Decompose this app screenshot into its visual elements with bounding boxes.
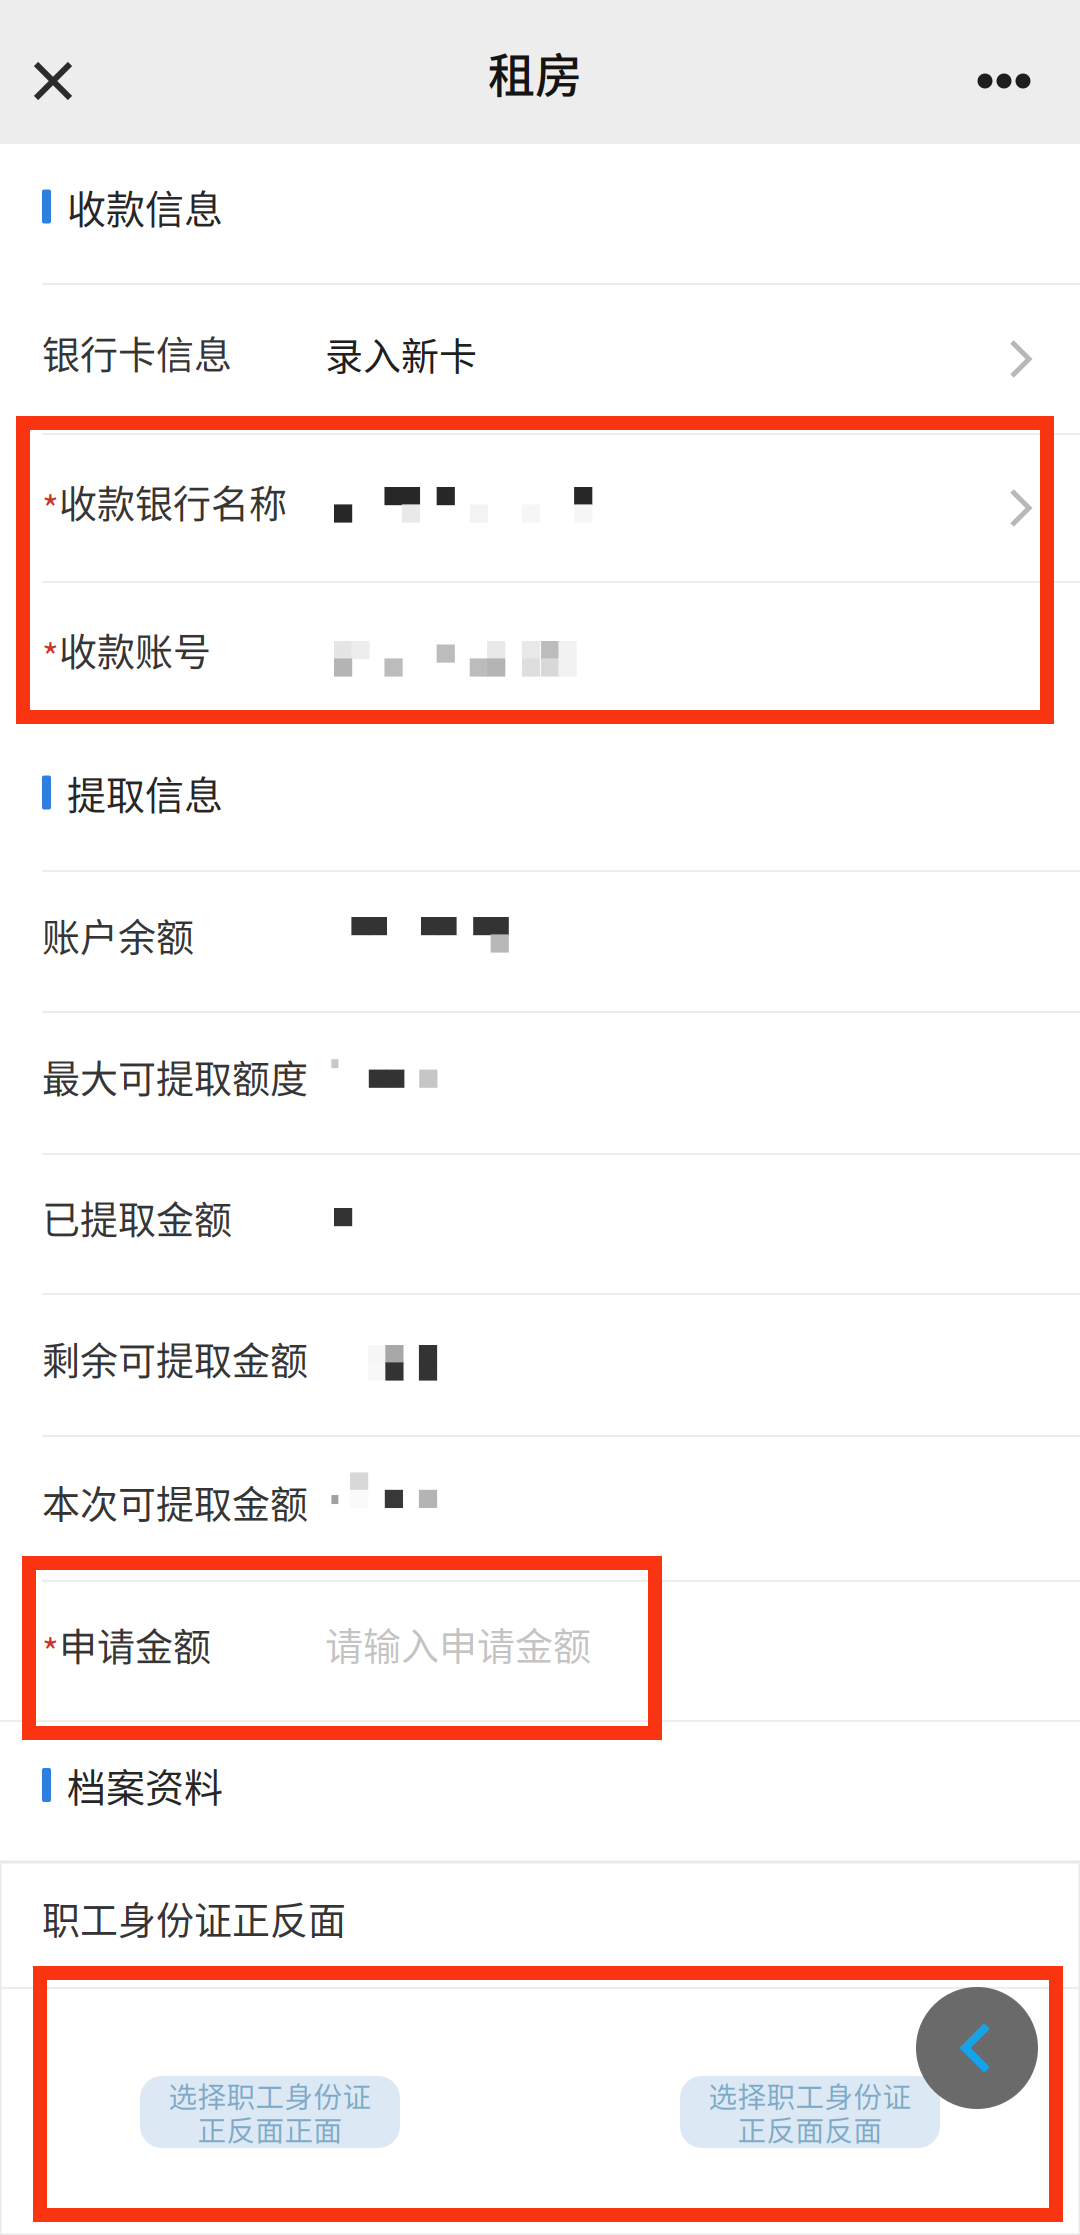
button[interactable]: * xyxy=(0,435,1080,581)
button[interactable]: 银行卡信息 xyxy=(0,285,1080,433)
staticText: 提取信息 xyxy=(67,764,223,821)
staticText: 请输入申请金额 xyxy=(325,1616,591,1671)
staticText: 选择职工身份证 xyxy=(168,2075,371,2116)
staticText: 录入新卡 xyxy=(325,326,477,381)
staticText: 账户余额 xyxy=(42,907,194,962)
staticText: 租房 xyxy=(488,38,582,106)
staticText: * xyxy=(42,629,59,681)
button[interactable]: 账户余额 xyxy=(0,872,1080,1011)
button[interactable]: 本次可提取金额 xyxy=(0,1437,1080,1580)
staticText: 收款银行名称 xyxy=(59,473,287,528)
staticText: 申请金额 xyxy=(59,1616,211,1671)
button[interactable]: 选择职工身份证 xyxy=(540,2076,1080,2148)
button[interactable]: 最大可提取额度 xyxy=(0,1013,1080,1153)
staticText: 正反面正面 xyxy=(197,2108,342,2149)
button[interactable]: * xyxy=(0,1582,1080,1720)
staticText: 正反面反面 xyxy=(737,2108,882,2149)
staticText: 档案资料 xyxy=(67,1757,223,1813)
staticText: 收款账号 xyxy=(59,621,211,676)
staticText: 最大可提取额度 xyxy=(42,1048,308,1103)
button[interactable]: 已提取金额 xyxy=(0,1155,1080,1293)
button[interactable]: * xyxy=(0,583,1080,729)
staticText: 已提取金额 xyxy=(42,1189,232,1244)
staticText: 剩余可提取金额 xyxy=(42,1330,308,1385)
button[interactable]: Close xyxy=(0,0,126,144)
staticText: 收款信息 xyxy=(67,178,223,235)
staticText: 本次可提取金额 xyxy=(42,1474,308,1529)
button[interactable]: 选择职工身份证 xyxy=(0,2076,540,2148)
staticText: * xyxy=(42,481,59,533)
button[interactable]: 剩余可提取金额 xyxy=(0,1295,1080,1435)
staticText: 职工身份证正反面 xyxy=(42,1890,346,1945)
staticText: 银行卡信息 xyxy=(42,324,232,379)
staticText: 选择职工身份证 xyxy=(708,2075,911,2116)
button[interactable]: Back xyxy=(916,1987,1038,2109)
button[interactable]: More options xyxy=(924,0,1080,144)
staticText: * xyxy=(42,1624,59,1676)
